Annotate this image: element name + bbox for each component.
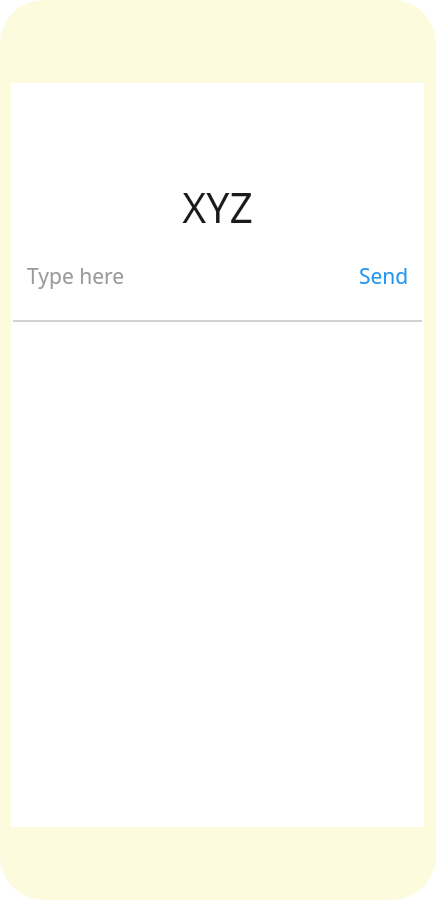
- button[interactable]: Type here: [27, 253, 359, 299]
- button[interactable]: Send: [359, 253, 409, 299]
- staticText: Send: [359, 262, 409, 291]
- staticText: Type here: [27, 262, 125, 291]
- staticText: XYZ: [182, 179, 253, 235]
